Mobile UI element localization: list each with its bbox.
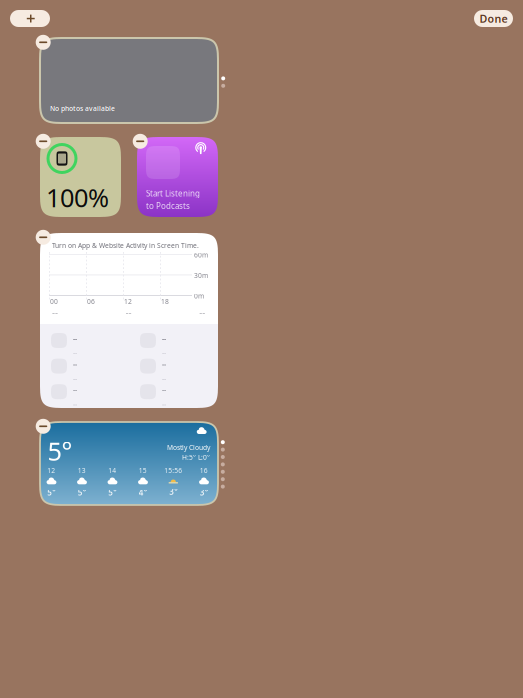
staticText: -- <box>73 360 77 368</box>
button[interactable]: Start Listening <box>137 137 218 217</box>
staticText: Start Listening <box>146 188 200 199</box>
staticText: 15 <box>139 466 147 475</box>
button[interactable]: 100% <box>40 137 121 217</box>
staticText: -- <box>199 306 205 319</box>
staticText: 14 <box>108 466 116 475</box>
staticText: to Podcasts <box>146 201 190 211</box>
staticText: -- <box>73 348 77 357</box>
staticText: 16 <box>200 466 208 475</box>
staticText: 5° <box>108 487 116 498</box>
button[interactable]: Remove widget <box>36 230 51 245</box>
staticText: 5° <box>47 487 55 498</box>
staticText: -- <box>73 400 77 408</box>
button[interactable]: Remove widget <box>36 419 51 434</box>
staticText: 30m <box>194 271 208 280</box>
staticText: 12 <box>47 466 55 475</box>
staticText: 60m <box>194 250 208 259</box>
staticText: 3° <box>200 487 208 498</box>
button[interactable]: Remove widget <box>36 35 51 50</box>
staticText: Done <box>479 11 507 26</box>
staticText: 18 <box>161 297 169 306</box>
staticText: 13 <box>78 466 86 475</box>
staticText: -- <box>162 374 166 383</box>
staticText: 12 <box>124 297 132 306</box>
staticText: 06 <box>87 297 95 306</box>
staticText: -- <box>162 334 166 343</box>
staticText: 5° <box>47 434 72 468</box>
button[interactable]: 5° <box>40 422 218 505</box>
staticText: -- <box>162 360 166 368</box>
staticText: -- <box>73 334 77 343</box>
staticText: H:5° L:0° <box>182 453 210 462</box>
button[interactable]: Add widget <box>10 10 50 27</box>
button[interactable]: No photos available <box>40 38 218 123</box>
staticText: 4° <box>139 487 147 498</box>
button[interactable]: Remove widget <box>133 134 148 149</box>
staticText: 3° <box>169 486 177 497</box>
staticText: 100% <box>46 180 109 214</box>
staticText: -- <box>126 306 132 319</box>
button[interactable]: Turn on App & Website Activity in Screen… <box>40 233 218 408</box>
staticText: -- <box>162 348 166 357</box>
staticText: -- <box>162 400 166 408</box>
button[interactable]: Done <box>474 10 513 27</box>
staticText: 00 <box>50 297 58 306</box>
staticText: 0m <box>194 291 204 300</box>
staticText: -- <box>162 385 166 394</box>
staticText: -- <box>73 374 77 383</box>
button[interactable]: Remove widget <box>36 134 51 149</box>
staticText: Turn on App & Website Activity in Screen… <box>52 241 199 250</box>
staticText: 15:56 <box>164 466 182 475</box>
staticText: 5° <box>78 487 86 498</box>
staticText: -- <box>52 306 58 319</box>
staticText: Mostly Cloudy <box>167 443 210 452</box>
staticText: -- <box>73 385 77 394</box>
staticText: No photos available <box>50 104 115 113</box>
